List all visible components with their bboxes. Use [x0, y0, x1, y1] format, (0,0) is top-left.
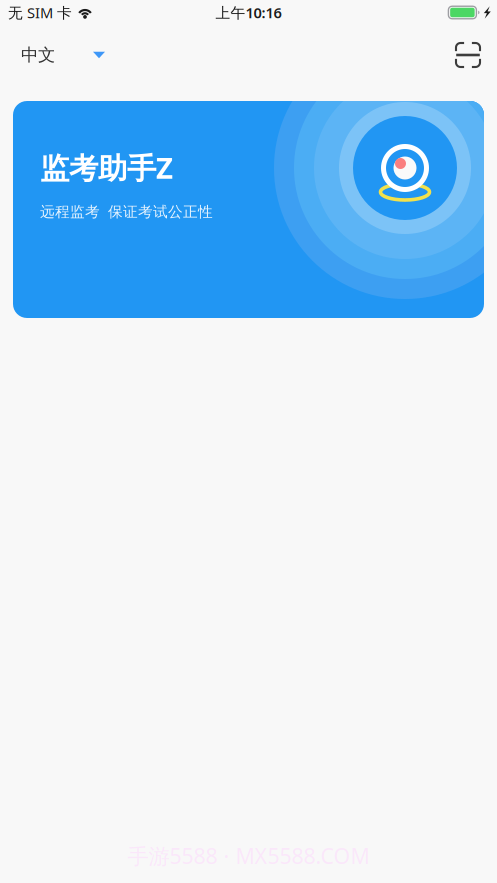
button[interactable]: 监考助手Z: [13, 101, 484, 318]
button[interactable]: Scan: [438, 25, 497, 85]
staticText: 中文: [21, 44, 55, 66]
staticText: 远程监考 保证考试公正性: [40, 203, 213, 221]
button[interactable]: 中文: [0, 25, 121, 85]
staticText: 手游5588 · MX5588.COM: [127, 842, 369, 870]
staticText: 监考助手Z: [40, 148, 173, 187]
staticText: 上午10:16: [215, 3, 281, 22]
staticText: 无 SIM 卡: [8, 3, 72, 22]
